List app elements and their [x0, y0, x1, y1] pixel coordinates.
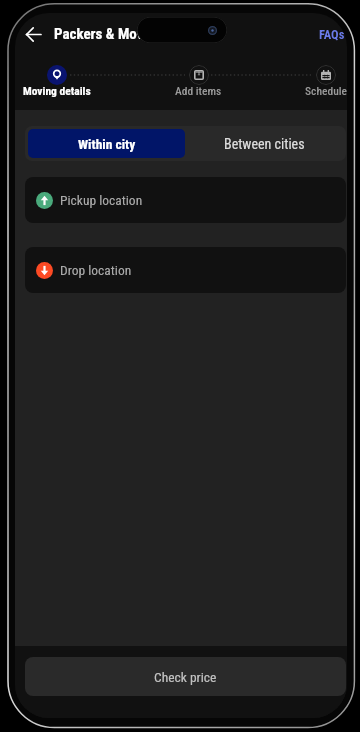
- staticText: Between cities: [224, 136, 305, 152]
- button[interactable]: FAQs: [313, 21, 347, 48]
- staticText: Add items: [175, 84, 222, 97]
- button[interactable]: Schedule: [305, 65, 347, 98]
- staticText: Schedule: [305, 84, 347, 97]
- button[interactable]: Add items: [175, 65, 222, 98]
- staticText: Pickup location: [60, 192, 143, 208]
- button[interactable]: Within city: [28, 129, 185, 158]
- staticText: FAQs: [319, 27, 345, 42]
- button[interactable]: Moving details: [23, 65, 91, 98]
- staticText: Drop location: [60, 262, 132, 278]
- staticText: Within city: [78, 136, 136, 152]
- button[interactable]: Back: [18, 17, 49, 51]
- button[interactable]: Pickup location: [25, 177, 346, 223]
- staticText: Check price: [154, 669, 217, 685]
- button[interactable]: Check price: [25, 657, 346, 696]
- staticText: Moving details: [23, 84, 91, 97]
- staticText: Packers & Movers: [54, 25, 163, 43]
- button[interactable]: Drop location: [25, 247, 346, 293]
- button[interactable]: Between cities: [185, 129, 343, 158]
